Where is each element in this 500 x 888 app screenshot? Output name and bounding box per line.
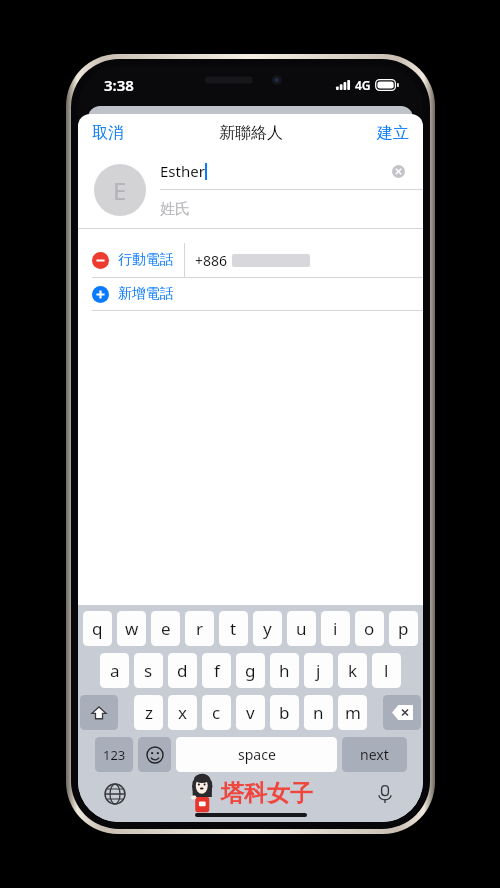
button[interactable]: Backspace [383,695,421,730]
staticText: r [196,617,204,640]
button[interactable]: t [219,611,248,646]
button[interactable]: o [355,611,384,646]
staticText: d [177,659,188,682]
button[interactable]: l [372,653,401,688]
button[interactable]: 123 [95,737,133,772]
staticText: 123 [103,746,126,764]
staticText: 4G [355,77,371,93]
button[interactable]: z [134,695,163,730]
staticText: h [279,659,290,682]
button[interactable]: j [304,653,333,688]
button[interactable]: Remove phone [78,243,423,277]
staticText: e [161,617,171,640]
button[interactable]: y [253,611,282,646]
staticText: o [364,617,375,640]
staticText: 取消 [92,123,124,143]
staticText: 塔科女子 [221,779,313,808]
staticText: E [113,174,127,207]
staticText: g [245,659,256,682]
staticText: 3:38 [104,75,134,95]
button[interactable]: f [202,653,231,688]
staticText: 行動電話 [118,251,174,269]
staticText: y [263,617,272,640]
button[interactable]: x [168,695,197,730]
staticText: m [345,701,361,724]
staticText: next [360,745,389,764]
button[interactable]: 取消 [78,117,138,149]
staticText: i [333,617,338,640]
staticText: 新聯絡人 [219,123,283,143]
staticText: a [110,659,120,682]
staticText: 姓氏 [160,200,190,219]
staticText: w [125,617,139,640]
button[interactable]: m [338,695,367,730]
button[interactable]: 建立 [363,117,423,149]
staticText: c [212,701,221,724]
staticText: n [313,701,324,724]
button[interactable]: n [304,695,333,730]
button[interactable]: d [168,653,197,688]
button[interactable]: e [151,611,180,646]
button[interactable]: E [94,164,146,216]
staticText: space [238,745,276,764]
button[interactable]: i [321,611,350,646]
staticText: x [178,701,187,724]
button[interactable]: Dictation [375,784,395,804]
staticText: v [246,701,255,724]
button[interactable]: r [185,611,214,646]
button[interactable]: g [236,653,265,688]
button[interactable]: a [100,653,129,688]
button[interactable]: Add phone [78,278,423,310]
button[interactable]: next [342,737,407,772]
button[interactable]: v [236,695,265,730]
button[interactable]: space [176,737,337,772]
button[interactable]: Clear text [392,165,405,178]
staticText: s [144,659,153,682]
button[interactable]: b [270,695,299,730]
button[interactable]: s [134,653,163,688]
staticText: j [316,659,321,682]
staticText: u [296,617,307,640]
button[interactable]: p [389,611,418,646]
staticText: 新增電話 [118,285,174,303]
button[interactable]: h [270,653,299,688]
staticText: +886 [195,251,228,270]
staticText: Esther [160,161,205,181]
staticText: q [92,617,103,640]
staticText: z [145,701,153,724]
button[interactable]: u [287,611,316,646]
staticText: p [398,617,409,640]
button[interactable]: q [83,611,112,646]
staticText: f [214,659,220,682]
staticText: t [230,617,237,640]
staticText: l [384,659,389,682]
other: Add phone [92,286,109,303]
button[interactable]: Emoji [138,737,171,772]
button[interactable]: w [117,611,146,646]
staticText: k [348,659,358,682]
staticText: 建立 [377,123,409,143]
button[interactable]: k [338,653,367,688]
button[interactable]: c [202,695,231,730]
button[interactable]: Change keyboard [104,783,126,805]
button[interactable]: Shift [80,695,118,730]
staticText: b [279,701,290,724]
other: Remove phone [92,252,109,269]
